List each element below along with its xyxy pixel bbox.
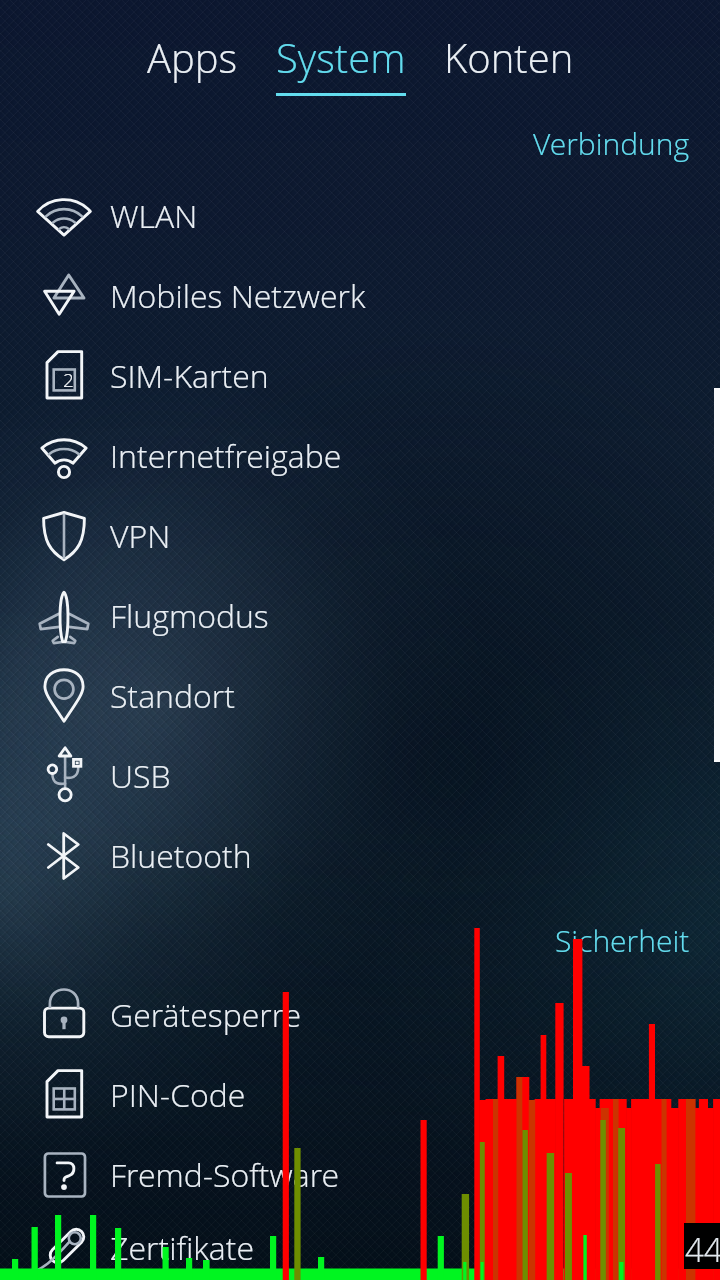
staticText: System [276,30,406,84]
staticText: Gerätesperre [110,993,302,1037]
button[interactable]: Mobiles Netzwerk [0,256,720,336]
staticText: Bluetooth [110,834,252,878]
staticText: Zertifikate [110,1226,254,1270]
button[interactable]: Zertifikate [0,1215,720,1280]
staticText: USB [110,754,171,798]
button[interactable]: WLAN [0,176,720,256]
staticText: Sicherheit [555,920,690,961]
button[interactable]: 2 [0,336,720,416]
staticText: 2 [63,367,74,393]
button[interactable]: USB [0,736,720,816]
button[interactable]: Fremd-Software [0,1135,720,1215]
button[interactable]: Bluetooth [0,816,720,896]
staticText: Mobiles Netzwerk [110,274,366,318]
button[interactable]: Flugmodus [0,576,720,656]
staticText: Verbindung [533,123,690,164]
button[interactable]: System [257,0,425,96]
staticText: Fremd-Software [110,1153,339,1197]
staticText: WLAN [110,194,198,238]
staticText: 44 [685,1227,720,1272]
button[interactable]: Gerätesperre [0,975,720,1055]
button[interactable]: Standort [0,656,720,736]
staticText: Konten [444,30,574,84]
staticText: VPN [110,514,171,558]
staticText: Standort [110,674,235,718]
staticText: SIM-Karten [110,354,269,398]
button[interactable]: Apps [128,0,257,84]
staticText: Apps [147,30,238,84]
button[interactable]: VPN [0,496,720,576]
staticText: Flugmodus [110,594,269,638]
button[interactable]: PIN-Code [0,1055,720,1135]
staticText: PIN-Code [110,1073,246,1117]
button[interactable]: Konten [425,0,593,84]
button[interactable]: Internetfreigabe [0,416,720,496]
staticText: Internetfreigabe [110,434,342,478]
